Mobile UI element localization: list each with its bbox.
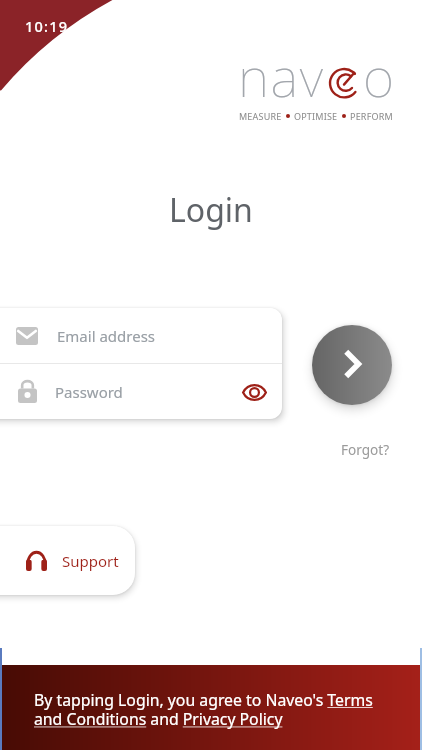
staticText: OPTIMISE — [294, 110, 338, 122]
staticText: By tapping Login, you agree to Naveo's T… — [34, 689, 379, 730]
button[interactable]: Forgot? — [341, 440, 390, 459]
staticText: PERFORM — [350, 110, 393, 122]
button[interactable]: Password — [0, 364, 282, 419]
staticText: MEASURE — [239, 110, 282, 122]
button[interactable]: Login — [312, 325, 392, 405]
staticText: nav — [238, 39, 358, 109]
staticText: 10:19 — [25, 16, 69, 36]
button[interactable]: Show password — [232, 370, 276, 414]
staticText: Support — [62, 551, 119, 571]
staticText: Password — [55, 382, 123, 402]
staticText: o — [363, 39, 403, 109]
staticText: Login — [169, 188, 253, 232]
button[interactable]: Email address — [0, 308, 282, 363]
staticText: Email address — [57, 326, 156, 346]
staticText: Forgot? — [341, 440, 390, 459]
button[interactable]: Support — [0, 526, 135, 595]
